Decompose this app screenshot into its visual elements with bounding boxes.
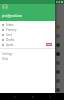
button[interactable]: Spam	[0, 42, 55, 47]
button[interactable]: Home	[30, 94, 35, 99]
other: Status icons	[56, 1, 63, 3]
button[interactable]: jane@gmail.com	[0, 0, 55, 21]
button[interactable]: Help	[0, 56, 55, 61]
staticText: Inbox	[6, 23, 14, 27]
staticText: jane@gmail.com	[2, 14, 23, 18]
staticText: 99+	[47, 43, 51, 46]
button[interactable]: Sent	[0, 32, 55, 37]
button[interactable]: Settings	[0, 51, 55, 56]
button[interactable]: Recents	[47, 94, 52, 99]
staticText: Help	[2, 57, 9, 61]
staticText: Settings	[2, 52, 13, 56]
staticText: Sent	[6, 33, 12, 37]
staticText: Primary	[6, 28, 17, 32]
button[interactable]: Inbox	[0, 22, 55, 27]
button[interactable]: Primary	[0, 27, 55, 32]
staticText: Spam	[6, 43, 14, 47]
button[interactable]: Back	[12, 94, 17, 99]
button[interactable]: Drafts	[0, 37, 55, 42]
staticText: Drafts	[6, 38, 15, 42]
